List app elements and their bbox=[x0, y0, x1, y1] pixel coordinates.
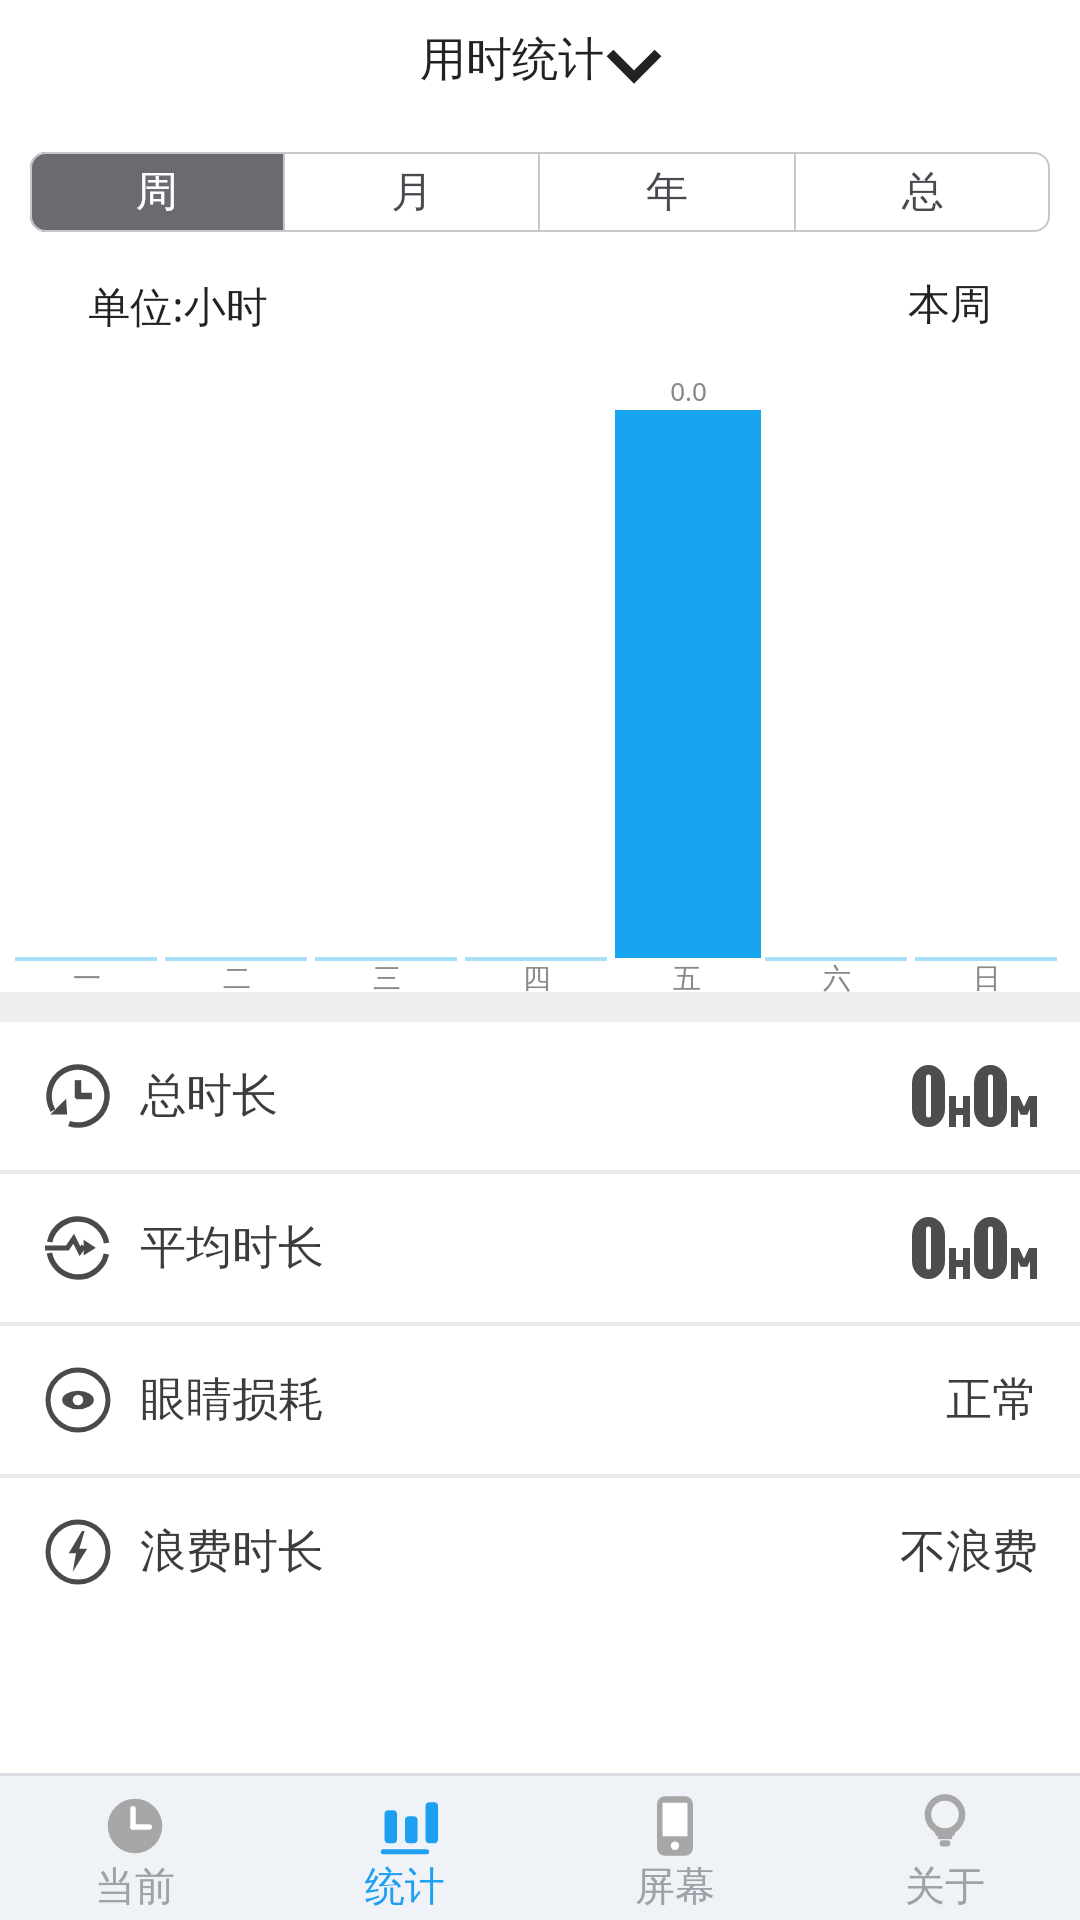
staticText: 月 bbox=[391, 166, 433, 219]
button[interactable]: 统计 bbox=[270, 1773, 540, 1920]
staticText: 三 bbox=[373, 961, 401, 996]
staticText: 单位:小时 bbox=[88, 277, 268, 334]
button[interactable]: 月 bbox=[285, 152, 538, 232]
staticText: 六 bbox=[823, 961, 851, 996]
button[interactable]: 屏幕 bbox=[540, 1773, 810, 1920]
button[interactable]: 平均时长 bbox=[0, 1174, 1080, 1322]
staticText: 统计 bbox=[365, 1861, 445, 1911]
staticText: 五 bbox=[673, 961, 701, 996]
staticText: 屏幕 bbox=[635, 1861, 715, 1911]
button[interactable]: 当前 bbox=[0, 1773, 270, 1920]
staticText: 浪费时长 bbox=[140, 1523, 324, 1581]
button[interactable]: 年 bbox=[540, 152, 794, 232]
staticText: 总 bbox=[902, 166, 944, 219]
staticText: 0.0 bbox=[670, 373, 707, 408]
staticText: 正常 bbox=[946, 1371, 1038, 1429]
button[interactable]: 周 bbox=[30, 152, 283, 232]
staticText: 本周 bbox=[908, 279, 992, 332]
staticText: 平均时长 bbox=[140, 1219, 324, 1277]
button[interactable]: 眼睛损耗 bbox=[0, 1326, 1080, 1474]
staticText: 关于 bbox=[905, 1861, 985, 1911]
button[interactable]: 关于 bbox=[810, 1773, 1080, 1920]
staticText: 四 bbox=[523, 961, 551, 996]
button[interactable]: 总 bbox=[796, 152, 1050, 232]
staticText: 总时长 bbox=[140, 1067, 278, 1125]
staticText: 当前 bbox=[95, 1861, 175, 1911]
staticText: 周 bbox=[136, 166, 178, 219]
staticText: 眼睛损耗 bbox=[140, 1371, 324, 1429]
button[interactable]: 总时长 bbox=[0, 1022, 1080, 1170]
button[interactable]: 浪费时长 bbox=[0, 1478, 1080, 1626]
staticText: 年 bbox=[646, 166, 688, 219]
staticText: 用时统计 bbox=[420, 31, 604, 89]
staticText: 二 bbox=[223, 961, 251, 996]
staticText: 日 bbox=[973, 961, 1001, 996]
staticText: 一 bbox=[73, 961, 101, 996]
staticText: 不浪费 bbox=[900, 1523, 1038, 1581]
